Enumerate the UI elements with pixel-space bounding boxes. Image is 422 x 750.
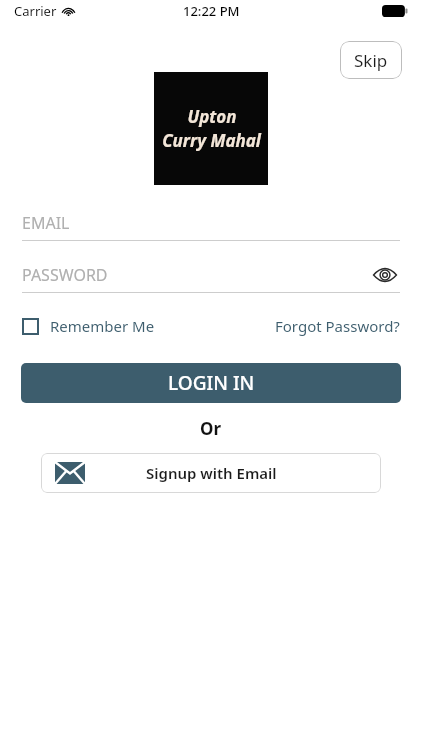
staticText: LOGIN IN [168,370,255,396]
staticText: Upton [187,105,237,128]
staticText: Carrier [14,2,57,20]
staticText: Remember Me [50,316,155,336]
button[interactable]: Show password [370,260,400,290]
button[interactable]: Forgot Password? [275,316,400,336]
staticText: EMAIL [22,212,70,234]
button[interactable]: Signup with Email [41,453,381,493]
button[interactable]: LOGIN IN [21,363,401,403]
staticText: PASSWORD [22,264,108,286]
staticText: Skip [354,49,388,72]
button[interactable]: Skip [340,41,402,79]
staticText: Or [200,417,222,440]
staticText: Forgot Password? [275,316,400,336]
button[interactable]: Remember Me [22,316,155,336]
staticText: Signup with Email [146,463,277,483]
staticText: 12:22 PM [183,2,240,20]
button[interactable]: EMAIL [22,205,400,241]
button[interactable]: PASSWORD [22,257,400,293]
staticText: Curry Mahal [162,129,261,152]
